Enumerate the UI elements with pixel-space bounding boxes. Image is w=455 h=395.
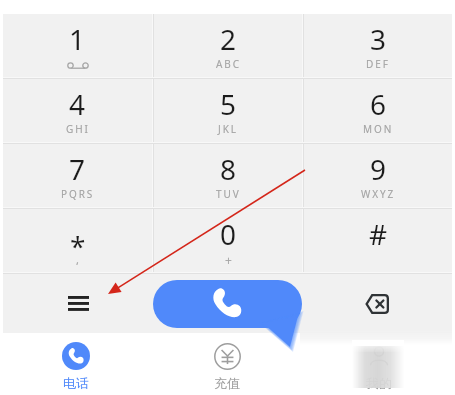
button[interactable]: 4 [3, 79, 152, 142]
staticText: MON [363, 122, 394, 136]
staticText: # [369, 215, 388, 253]
staticText: 3 [370, 20, 387, 58]
button[interactable]: 7 [3, 144, 152, 207]
staticText: 充值 [214, 375, 240, 391]
staticText: ABC [216, 57, 241, 71]
staticText: GHI [66, 122, 90, 136]
staticText: 9 [370, 150, 387, 188]
staticText: 8 [220, 150, 237, 188]
staticText: 1 [69, 20, 86, 58]
staticText: WXYZ [361, 187, 396, 201]
button[interactable]: 8 [154, 144, 302, 207]
staticText: 0 [220, 215, 237, 253]
button[interactable]: 5 [154, 79, 302, 142]
staticText: 4 [69, 85, 86, 123]
button[interactable]: 充值 [151, 334, 303, 395]
staticText: , [76, 252, 79, 267]
button[interactable]: 0 [154, 209, 302, 272]
button[interactable]: Call [153, 280, 302, 328]
staticText: 我的 [366, 375, 392, 391]
button[interactable]: Delete [302, 274, 452, 333]
staticText: DEF [366, 57, 390, 71]
button[interactable]: 电话 [0, 334, 151, 395]
staticText: + [225, 252, 232, 268]
staticText: 2 [220, 20, 237, 58]
staticText: 电话 [63, 375, 89, 391]
staticText: 6 [370, 85, 387, 123]
button[interactable]: 1 [3, 14, 152, 77]
button[interactable]: 2 [154, 14, 302, 77]
button[interactable]: Menu [3, 274, 153, 333]
staticText: TUV [216, 187, 241, 201]
button[interactable]: 我的 [303, 334, 455, 395]
staticText: * [70, 227, 86, 265]
staticText: 5 [220, 85, 237, 123]
button[interactable]: # [304, 209, 452, 272]
staticText: PQRS [61, 187, 95, 201]
button[interactable]: 3 [304, 14, 452, 77]
button[interactable]: 9 [304, 144, 452, 207]
staticText: JKL [218, 122, 238, 136]
button[interactable]: * [3, 209, 152, 272]
button[interactable]: 6 [304, 79, 452, 142]
staticText: 7 [69, 150, 86, 188]
